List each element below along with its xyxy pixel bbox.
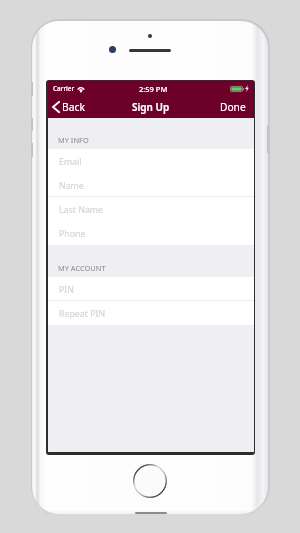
button[interactable]: Home: [133, 464, 167, 498]
button[interactable]: Email: [48, 149, 254, 173]
button[interactable]: Done: [220, 100, 246, 114]
staticText: Carrier: [53, 84, 75, 93]
staticText: Done: [220, 100, 246, 114]
staticText: Phone: [59, 228, 86, 240]
button[interactable]: Phone: [48, 221, 254, 245]
button[interactable]: PIN: [48, 277, 254, 301]
staticText: MY ACCOUNT: [58, 263, 106, 273]
staticText: Back: [62, 100, 85, 114]
staticText: 2:59 PM: [139, 84, 168, 94]
staticText: Email: [59, 156, 82, 168]
staticText: Repeat PIN: [59, 308, 106, 320]
button[interactable]: Repeat PIN: [48, 301, 254, 325]
staticText: Sign Up: [132, 100, 170, 114]
button[interactable]: Last Name: [48, 197, 254, 221]
button[interactable]: Back: [52, 100, 85, 114]
button[interactable]: Name: [48, 173, 254, 197]
staticText: PIN: [59, 284, 74, 296]
staticText: Last Name: [59, 204, 104, 216]
staticText: Name: [59, 180, 84, 192]
staticText: MY INFO: [58, 135, 89, 145]
